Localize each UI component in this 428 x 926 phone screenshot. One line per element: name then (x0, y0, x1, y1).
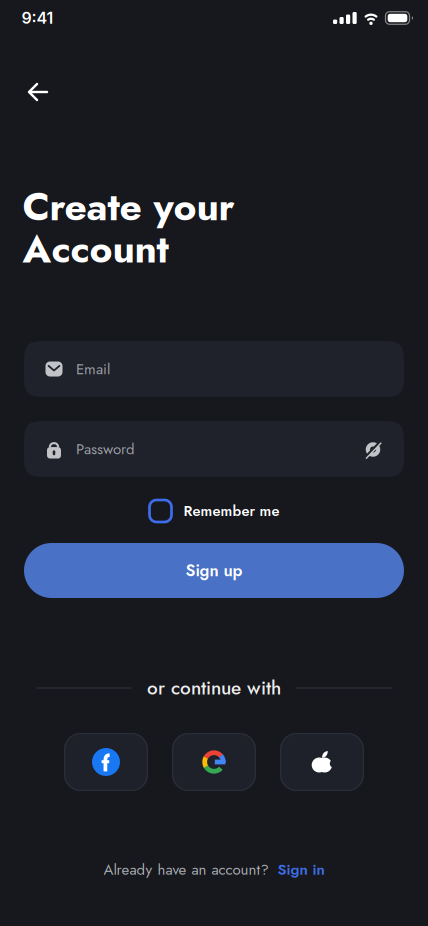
staticText: Already have an account? (103, 859, 268, 880)
staticText: Account (22, 221, 168, 277)
staticText: Email (76, 358, 110, 380)
button[interactable]: Continue with Google (172, 733, 256, 791)
staticText: Sign in (277, 859, 324, 880)
button[interactable]: Sign up (24, 543, 404, 598)
staticText: or continue with (147, 674, 281, 702)
staticText: 9:41 (21, 8, 53, 28)
staticText: Remember me (183, 500, 279, 522)
button[interactable]: Remember me (149, 500, 279, 522)
staticText: Sign up (185, 559, 242, 582)
button[interactable]: Back (16, 72, 60, 112)
button[interactable]: Continue with Facebook (64, 733, 148, 791)
button[interactable]: Show password (362, 438, 384, 460)
button[interactable]: Sign in (277, 859, 324, 880)
staticText: Create your (22, 178, 234, 235)
staticText: Password (76, 438, 135, 460)
button[interactable]: Continue with Apple (280, 733, 364, 791)
